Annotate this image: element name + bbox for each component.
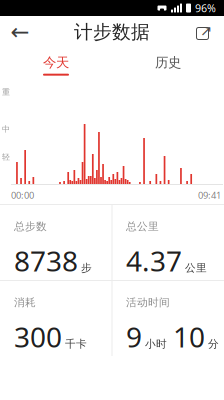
staticText: 300 — [14, 318, 62, 355]
staticText: 历史 — [155, 54, 181, 71]
button[interactable]: 总步数 — [0, 205, 112, 280]
staticText: 总公里 — [126, 220, 159, 233]
button[interactable]: 今天 — [0, 48, 112, 82]
button[interactable]: 消耗 — [0, 281, 112, 356]
staticText: ← — [10, 19, 29, 45]
staticText: 8738 — [14, 242, 78, 279]
staticText: 4.37 — [126, 242, 182, 279]
staticText: 步 — [81, 261, 92, 275]
staticText: 09:41 — [198, 189, 221, 201]
staticText: 00:00 — [11, 189, 34, 201]
staticText: 96% — [195, 1, 216, 15]
staticText: 公里 — [185, 261, 207, 275]
staticText: 今天 — [43, 54, 69, 71]
button[interactable]: Share — [184, 16, 224, 48]
staticText: 10 — [173, 318, 205, 355]
staticText: 活动时间 — [126, 296, 170, 309]
staticText: 中 — [2, 124, 10, 134]
button[interactable]: Back — [0, 16, 40, 48]
staticText: 计步数据 — [74, 20, 150, 43]
staticText: 轻 — [2, 152, 10, 162]
button[interactable]: 活动时间 — [112, 281, 224, 356]
staticText: 消耗 — [14, 296, 36, 309]
staticText: 千卡 — [65, 337, 87, 351]
staticText: 总步数 — [14, 220, 47, 233]
staticText: ↗ — [200, 23, 212, 39]
button[interactable]: 历史 — [112, 48, 224, 82]
staticText: 重 — [2, 87, 10, 97]
staticText: 分 — [208, 337, 219, 351]
staticText: 小时 — [145, 337, 167, 351]
staticText: 9 — [126, 318, 142, 355]
button[interactable]: 总公里 — [112, 205, 224, 280]
